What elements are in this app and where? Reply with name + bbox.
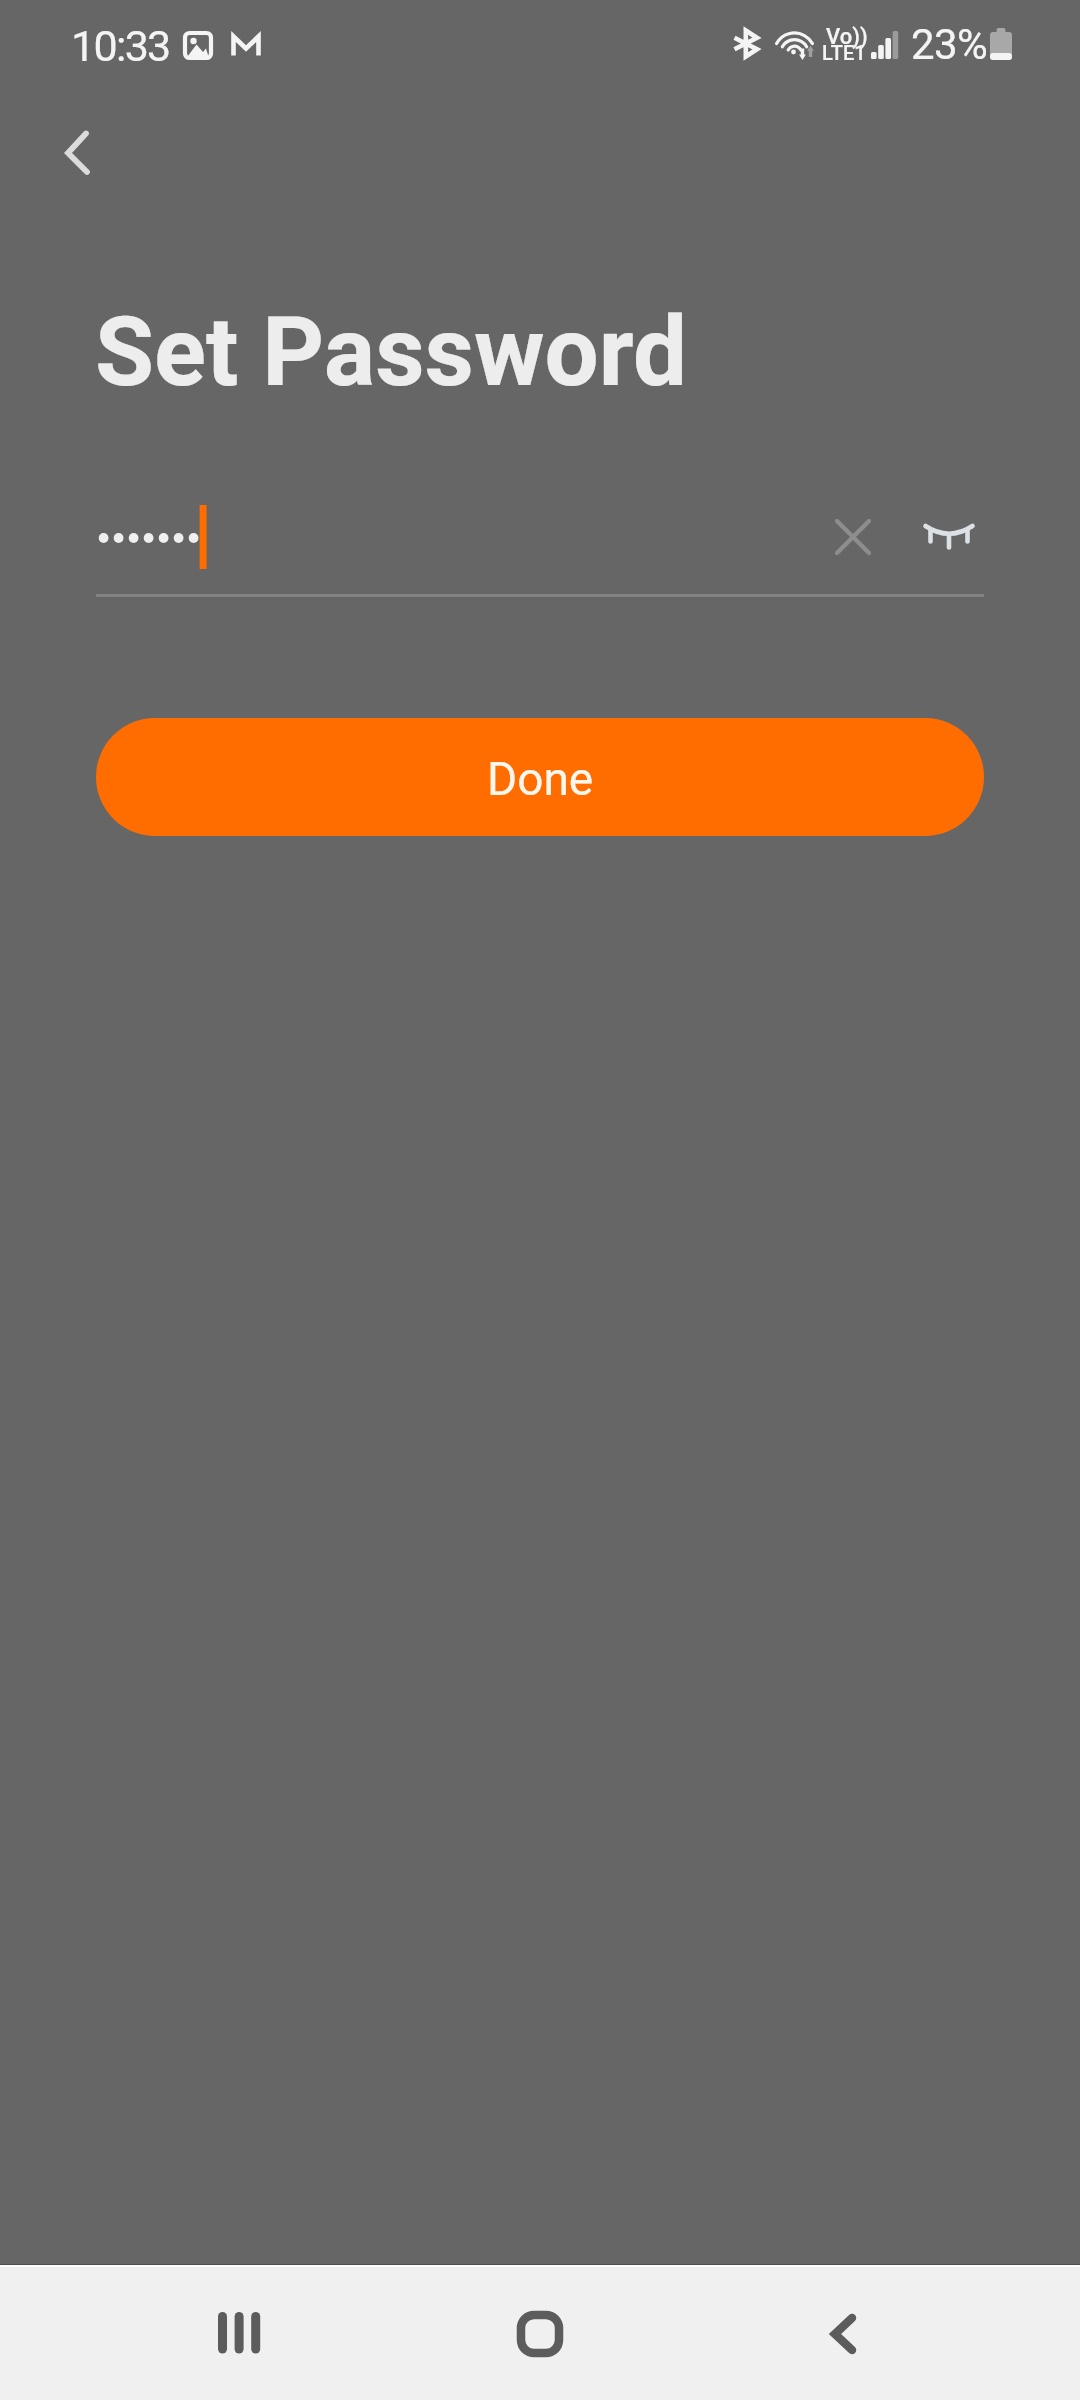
button[interactable]: Done	[96, 718, 984, 836]
button[interactable]: Clear text	[809, 493, 897, 581]
button[interactable]: Back	[780, 2264, 904, 2400]
staticText: Set Password	[95, 296, 688, 409]
button[interactable]: Show password	[907, 493, 995, 581]
staticText: 23%	[911, 20, 988, 69]
staticText: Done	[487, 752, 594, 806]
staticText: Vo))	[826, 24, 868, 50]
button[interactable]: Recent apps	[178, 2264, 302, 2400]
button[interactable]: Back	[22, 110, 110, 198]
staticText: 10:33	[71, 21, 170, 71]
staticText: LTE1	[822, 41, 866, 64]
button[interactable]: Home	[478, 2264, 602, 2400]
